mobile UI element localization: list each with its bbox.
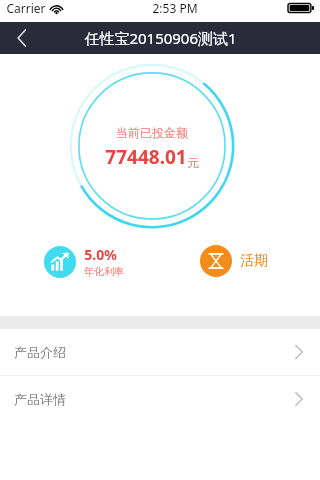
- button[interactable]: 5.0%: [44, 245, 124, 278]
- staticText: 2:53 PM: [152, 0, 198, 16]
- staticText: 产品详情: [14, 391, 66, 407]
- staticText: 年化利率: [84, 265, 124, 278]
- staticText: 任性宝20150906测试1: [84, 28, 237, 48]
- staticText: 元: [187, 155, 199, 170]
- staticText: 产品介绍: [14, 344, 66, 360]
- staticText: 5.0%: [84, 245, 117, 264]
- button[interactable]: 活期: [200, 245, 268, 277]
- button[interactable]: Back: [0, 22, 44, 54]
- button[interactable]: 产品介绍: [0, 329, 320, 375]
- staticText: 当前已投金额: [116, 125, 188, 140]
- staticText: 活期: [240, 252, 268, 270]
- staticText: 77448.01: [105, 144, 187, 170]
- button[interactable]: 产品详情: [0, 376, 320, 422]
- staticText: Carrier: [6, 0, 46, 16]
